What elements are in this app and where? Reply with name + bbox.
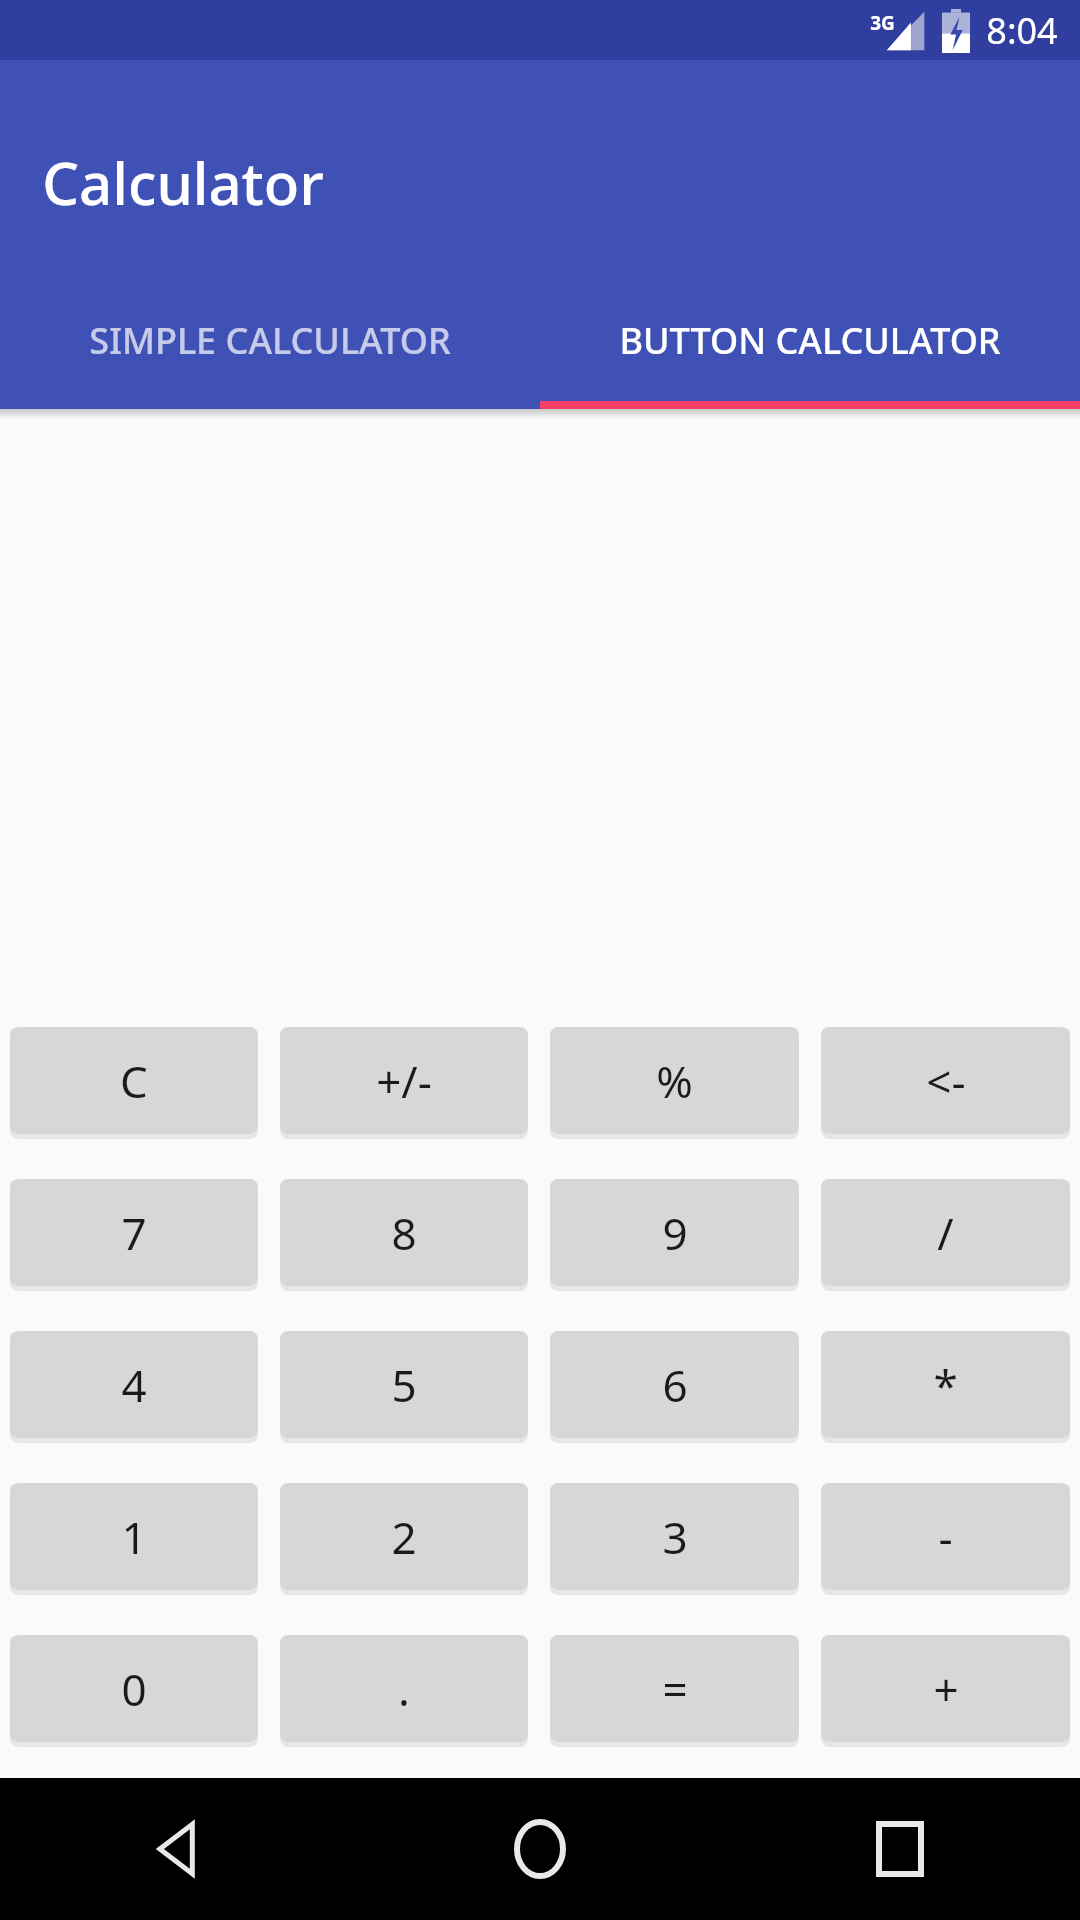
button[interactable]: Back [0,1778,360,1920]
button[interactable]: - [821,1483,1070,1590]
staticText: SIMPLE CALCULATOR [89,316,451,365]
button[interactable]: Home [360,1778,720,1920]
staticText: +/- [376,1051,432,1111]
button[interactable]: = [550,1635,799,1742]
button[interactable]: BUTTON CALCULATOR [540,288,1080,409]
staticText: 5 [391,1355,417,1415]
staticText: 9 [662,1203,688,1263]
button[interactable]: 8 [280,1179,528,1286]
button[interactable]: 9 [550,1179,799,1286]
staticText: BUTTON CALCULATOR [619,316,1001,365]
staticText: % [656,1051,693,1111]
staticText: C [120,1051,148,1111]
staticText: = [662,1659,688,1719]
button[interactable]: 7 [10,1179,258,1286]
staticText: 7 [121,1203,147,1263]
button[interactable]: 5 [280,1331,528,1438]
staticText: 4 [121,1355,147,1415]
button[interactable]: <- [821,1027,1070,1134]
button[interactable]: . [280,1635,528,1742]
staticText: 6 [662,1355,688,1415]
button[interactable]: 2 [280,1483,528,1590]
button[interactable]: 1 [10,1483,258,1590]
button[interactable]: % [550,1027,799,1134]
button[interactable]: 6 [550,1331,799,1438]
staticText: 0 [121,1659,147,1719]
staticText: 1 [121,1507,147,1567]
staticText: 2 [391,1507,417,1567]
button[interactable]: + [821,1635,1070,1742]
staticText: 3G [870,10,895,36]
staticText: + [933,1659,959,1719]
button[interactable]: 0 [10,1635,258,1742]
staticText: * [933,1355,958,1415]
button[interactable]: +/- [280,1027,528,1134]
button[interactable]: 4 [10,1331,258,1438]
staticText: 3 [662,1507,688,1567]
staticText: - [938,1507,953,1567]
staticText: 8 [391,1203,417,1263]
staticText: Calculator [42,143,324,222]
staticText: <- [926,1051,966,1111]
button[interactable]: Recent apps [720,1778,1080,1920]
button[interactable]: 3 [550,1483,799,1590]
button[interactable]: * [821,1331,1070,1438]
button[interactable]: C [10,1027,258,1134]
staticText: / [937,1203,954,1263]
staticText: 8:04 [986,6,1058,55]
button[interactable]: SIMPLE CALCULATOR [0,288,540,409]
button[interactable]: / [821,1179,1070,1286]
staticText: . [398,1659,410,1719]
